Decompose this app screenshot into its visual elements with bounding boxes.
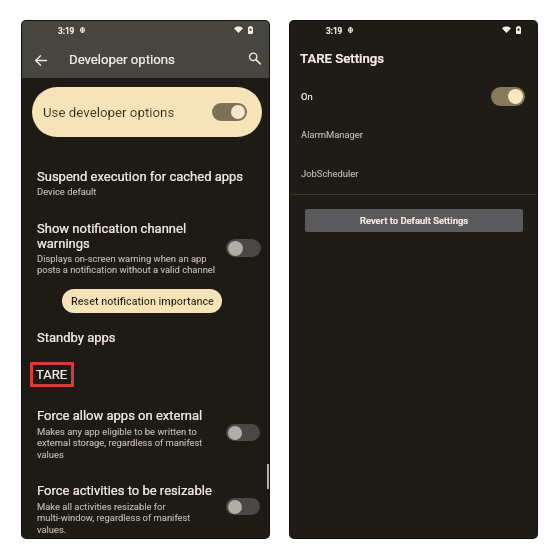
staticText: Force activities to be resizable — [37, 483, 212, 498]
button[interactable] — [290, 161, 537, 191]
staticText: Make all activities resizable for multi-… — [37, 501, 191, 535]
staticText: Reset notification importance — [71, 295, 214, 308]
button[interactable]: Show notification channel warnings toggl… — [226, 239, 261, 257]
button[interactable]: Force activities to be resizable toggle — [226, 498, 260, 515]
staticText: 3:19 — [58, 26, 75, 36]
button[interactable]: Search — [244, 47, 266, 69]
staticText: Force allow apps on external — [37, 408, 203, 423]
button[interactable] — [290, 123, 537, 153]
button[interactable]: Back — [30, 49, 52, 71]
button[interactable]: Force allow apps on external toggle — [226, 424, 260, 441]
button[interactable]: TARE — [30, 362, 74, 387]
staticText: Displays on-screen warning when an app p… — [37, 253, 216, 275]
button[interactable]: On toggle — [491, 87, 525, 106]
staticText: AlarmManager — [301, 129, 363, 140]
staticText: JobScheduler — [301, 168, 359, 179]
button[interactable] — [290, 83, 537, 110]
button[interactable] — [22, 217, 269, 279]
staticText: TARE Settings — [300, 51, 384, 66]
staticText: Developer options — [69, 52, 175, 67]
staticText: TARE — [36, 367, 68, 382]
staticText: Makes any app eligible to be written to … — [37, 426, 203, 461]
button[interactable]: Revert to Default Settings — [305, 209, 523, 232]
staticText: Suspend execution for cached apps — [37, 169, 244, 184]
button[interactable] — [22, 473, 269, 531]
staticText: On — [301, 91, 313, 102]
button[interactable]: Reset notification importance — [62, 289, 222, 313]
button[interactable]: Use developer options toggle — [212, 103, 247, 121]
button[interactable] — [22, 167, 269, 201]
staticText: Standby apps — [37, 330, 116, 345]
staticText: Show notification channel warnings — [37, 221, 187, 252]
staticText: Use developer options — [43, 105, 175, 121]
staticText: Revert to Default Settings — [360, 215, 469, 226]
staticText: Device default — [37, 186, 97, 197]
button[interactable] — [22, 324, 269, 348]
button[interactable] — [32, 87, 262, 137]
button[interactable] — [22, 401, 269, 459]
staticText: 3:19 — [326, 26, 343, 36]
